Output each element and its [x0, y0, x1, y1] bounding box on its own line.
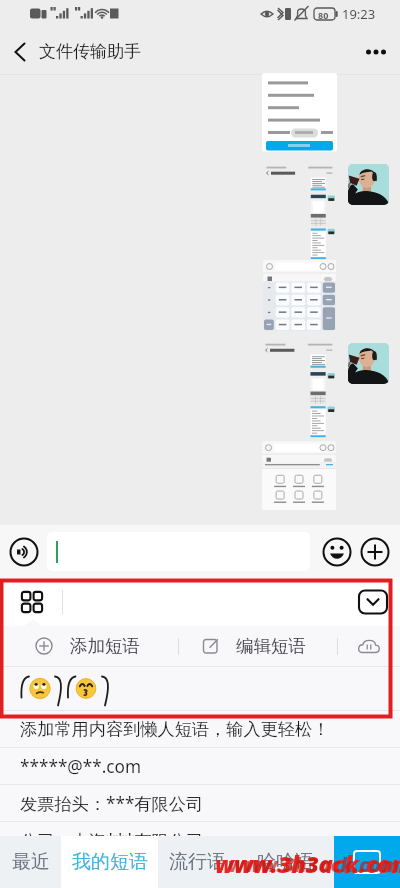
button[interactable]: [262, 73, 337, 152]
staticText: 发票抬头：***有限公司: [20, 792, 204, 815]
staticText: 80: [318, 9, 329, 21]
button[interactable]: 添加常用内容到懒人短语，输入更轻松！: [0, 711, 400, 748]
staticText: 添加短语: [70, 635, 140, 657]
button[interactable]: *****@**.com: [0, 748, 400, 785]
button[interactable]: Sync phrases: [338, 626, 400, 666]
button[interactable]: 公司：上海***有限公司: [0, 822, 400, 859]
button[interactable]: 添加短语: [0, 626, 178, 666]
staticText: 流行语: [169, 850, 226, 874]
button[interactable]: More functions: [357, 534, 393, 570]
button[interactable]: [262, 341, 336, 510]
button[interactable]: [263, 164, 336, 331]
button[interactable]: 编辑短语: [179, 626, 337, 666]
button[interactable]: 流行语: [158, 836, 236, 888]
staticText: www.3h3ack.com: [215, 848, 400, 879]
button[interactable]: 哈哈语: [236, 836, 334, 888]
button[interactable]: 发票抬头：***有限公司: [0, 785, 400, 822]
staticText: *****@**.com: [20, 755, 142, 778]
staticText: 文件传输助手: [39, 41, 141, 62]
staticText: 最近: [12, 850, 50, 874]
staticText: 添加常用内容到懒人短语，输入更轻松！: [20, 718, 330, 740]
staticText: 19:23: [342, 5, 376, 23]
button[interactable]: More options: [356, 30, 400, 74]
staticText: 公司：上海***有限公司: [20, 829, 204, 852]
staticText: www.3h3ack.com: [228, 851, 400, 878]
button[interactable]: Contact avatar: [348, 343, 389, 384]
button[interactable]: Keyboard settings: [334, 836, 400, 888]
staticText: 哈哈语: [257, 850, 314, 874]
button[interactable]: Collapse panel: [356, 588, 390, 616]
button[interactable]: 最近: [0, 836, 61, 888]
button[interactable]: Voice input: [6, 534, 42, 570]
staticText: 编辑短语: [236, 635, 306, 657]
button[interactable]: 我的短语: [61, 836, 158, 888]
button[interactable]: Contact avatar: [348, 164, 389, 205]
button[interactable]: Emoji: [319, 534, 355, 570]
button[interactable]: Phrase categories: [14, 584, 50, 620]
button[interactable]: [47, 532, 310, 571]
button[interactable]: Back: [0, 33, 38, 71]
staticText: 我的短语: [72, 850, 148, 874]
button[interactable]: [0, 667, 400, 710]
